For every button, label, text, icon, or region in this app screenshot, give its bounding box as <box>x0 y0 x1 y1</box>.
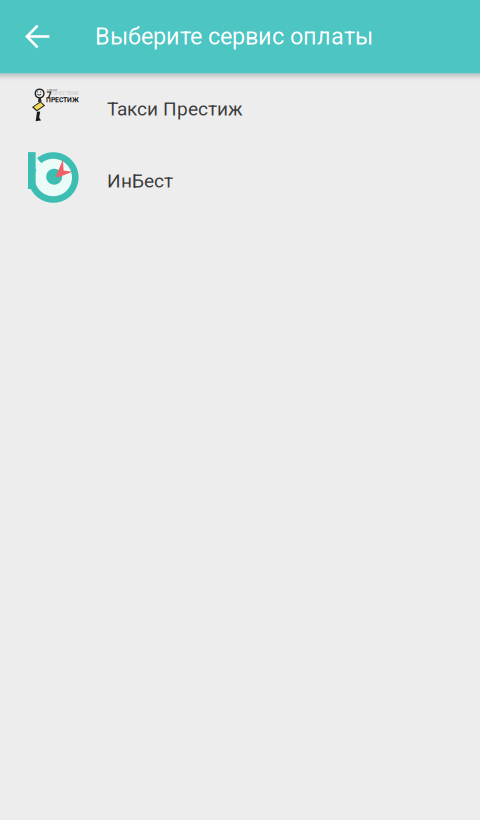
staticText: ПРЕСТИЖ <box>51 90 79 96</box>
staticText: Такси Престиж <box>107 98 243 120</box>
staticText: Выберите сервис оплаты <box>95 23 373 50</box>
staticText: ПРЕСТИЖ <box>46 96 79 104</box>
button[interactable]: Back <box>0 0 95 73</box>
staticText: 7 <box>46 90 51 101</box>
staticText: такси <box>47 88 57 92</box>
button[interactable]: ИнБест <box>0 135 480 221</box>
button[interactable]: такси <box>0 73 480 135</box>
staticText: ИнБест <box>107 170 173 192</box>
